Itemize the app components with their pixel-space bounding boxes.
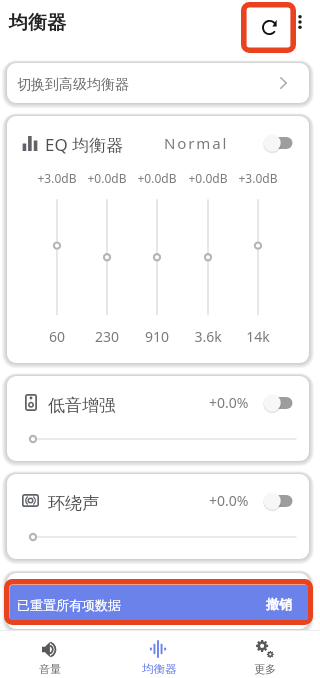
button[interactable]: 切换到高级均衡器	[7, 63, 309, 103]
staticText: 低音增强	[48, 395, 116, 416]
button[interactable]: Band 4	[194, 193, 222, 321]
button[interactable]: 环绕声 toggle	[255, 489, 301, 513]
staticText: +0.0%	[209, 393, 249, 412]
button[interactable]: Band 2	[93, 193, 121, 321]
staticText: +3.0dB	[35, 170, 79, 186]
staticText: 撤销	[266, 596, 292, 612]
button[interactable]: 更多	[214, 630, 320, 678]
button[interactable]: Band 3	[143, 193, 171, 321]
staticText: 切换到高级均衡器	[17, 76, 129, 94]
button[interactable]: 环绕声 level	[19, 523, 297, 551]
button[interactable]: More options	[292, 12, 307, 32]
staticText: +0.0dB	[186, 170, 230, 186]
staticText: 60	[35, 327, 79, 346]
button[interactable]: 音量	[0, 630, 107, 678]
staticText: 3.6k	[186, 327, 230, 346]
button[interactable]: Band 1	[43, 193, 71, 321]
staticText: 910	[135, 327, 179, 346]
staticText: 更多	[254, 662, 276, 676]
staticText: 环绕声	[48, 493, 99, 514]
staticText: 音量	[39, 662, 61, 676]
staticText: +0.0dB	[135, 170, 179, 186]
staticText: Normal	[164, 133, 229, 153]
staticText: 均衡器	[9, 11, 66, 35]
staticText: EQ 均衡器	[45, 133, 124, 156]
staticText: 已重置所有项数据	[17, 597, 121, 613]
staticText: +0.0%	[209, 491, 249, 510]
staticText: +3.0dB	[236, 170, 280, 186]
staticText: 230	[85, 327, 129, 346]
staticText: +0.0dB	[85, 170, 129, 186]
staticText: 14k	[236, 327, 280, 346]
button[interactable]: 低音增强 toggle	[255, 391, 301, 415]
button[interactable]: EQ toggle	[255, 131, 301, 155]
button[interactable]: 低音增强 level	[19, 425, 297, 453]
button[interactable]: Refresh	[241, 2, 296, 53]
button[interactable]: Band 5	[244, 193, 272, 321]
button[interactable]: 均衡器	[107, 630, 214, 678]
button[interactable]: 已重置所有项数据	[10, 585, 308, 620]
staticText: 均衡器	[142, 662, 177, 676]
